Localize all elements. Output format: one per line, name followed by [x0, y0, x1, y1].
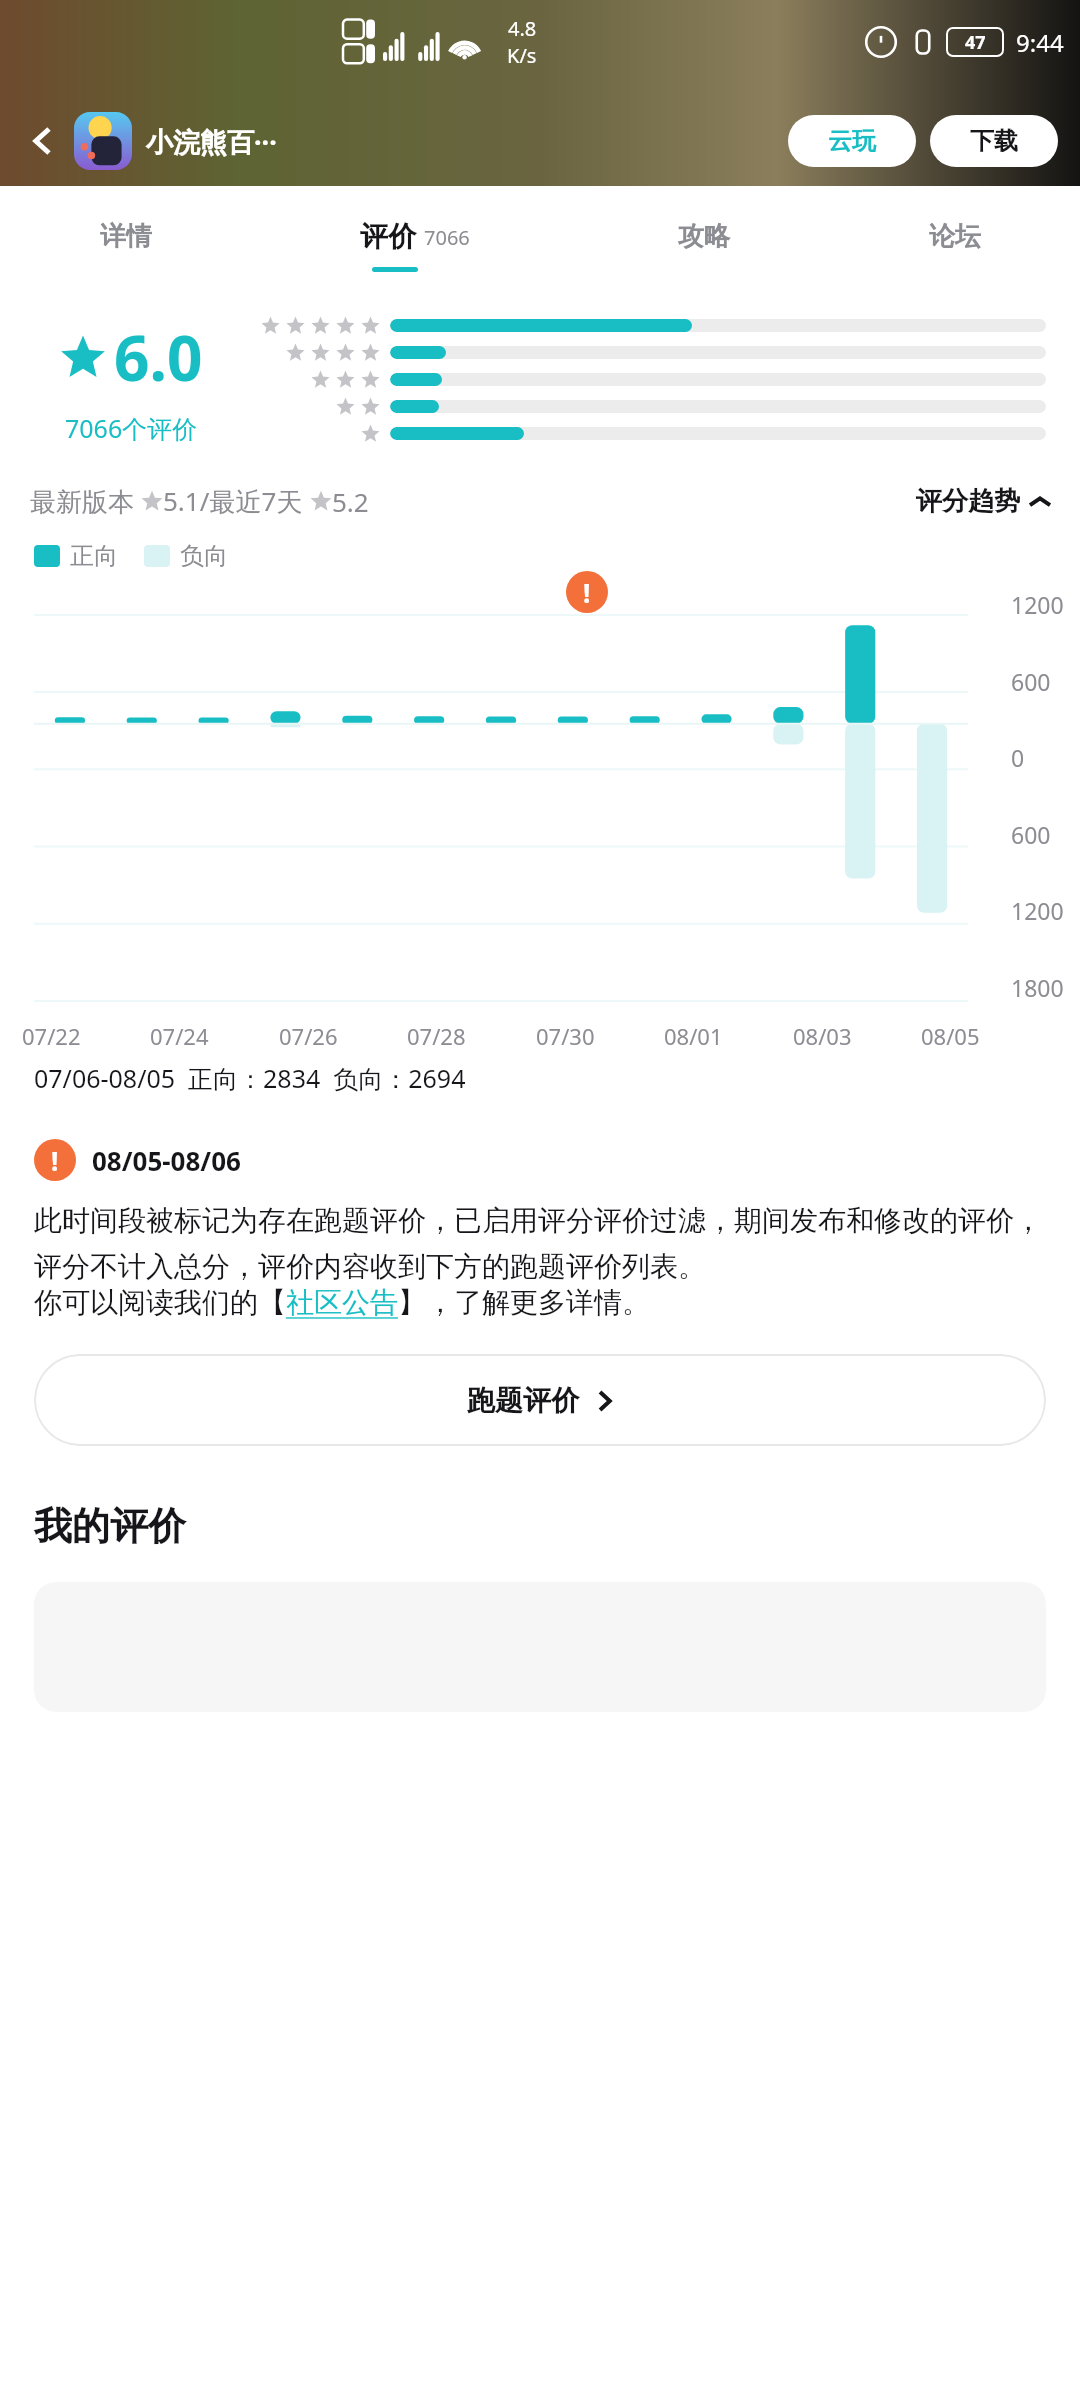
staticText: 07/22: [22, 1021, 81, 1051]
button[interactable]: 云玩: [788, 115, 916, 167]
staticText: 此时间段被标记为存在跑题评价，已启用评分评价过滤，期间发布和修改的评价，评分不计…: [34, 1203, 1046, 1285]
button[interactable]: 跑题评价: [34, 1354, 1046, 1446]
button[interactable]: 下载: [930, 115, 1058, 167]
staticText: 详情: [100, 220, 152, 253]
staticText: 7066个评价: [65, 411, 198, 445]
staticText: 1200: [1011, 895, 1064, 926]
staticText: 正向: [70, 541, 118, 571]
staticText: K/s: [507, 42, 537, 69]
button[interactable]: 论坛: [829, 186, 1080, 286]
staticText: 4.8: [508, 15, 537, 42]
staticText: 07/30: [536, 1021, 595, 1051]
staticText: 下载: [970, 126, 1018, 156]
button[interactable]: 详情: [0, 186, 251, 286]
staticText: 小浣熊百···: [146, 123, 277, 160]
button[interactable]: Warning: [566, 571, 608, 613]
staticText: 07/26: [279, 1021, 338, 1051]
staticText: 08/05-08/06: [92, 1143, 241, 1178]
button[interactable]: 评分趋势: [916, 485, 1050, 518]
staticText: 0: [1011, 742, 1025, 773]
staticText: 论坛: [929, 220, 981, 253]
staticText: 07/06-08/05 正向：2834 负向：2694: [34, 1061, 466, 1095]
staticText: 1800: [1011, 972, 1064, 1003]
staticText: 47: [965, 30, 986, 55]
staticText: 负向: [180, 541, 228, 571]
button[interactable]: 评价: [251, 186, 578, 286]
staticText: 云玩: [828, 126, 876, 156]
button[interactable]: Back: [16, 114, 70, 168]
staticText: 5.2: [332, 484, 369, 519]
staticText: 评价: [360, 219, 416, 254]
staticText: !: [583, 575, 591, 610]
staticText: 我的评价: [34, 1502, 186, 1550]
staticText: 08/03: [793, 1021, 852, 1051]
staticText: 07/28: [407, 1021, 466, 1051]
staticText: !: [51, 1143, 59, 1178]
staticText: 跑题评价: [467, 1383, 579, 1418]
staticText: 最新版本: [30, 483, 141, 519]
staticText: 5.1/最近7天: [163, 483, 310, 519]
staticText: 600: [1011, 666, 1051, 697]
staticText: 你可以阅读我们的【社区公告】，了解更多详情。: [34, 1285, 650, 1320]
staticText: 7066: [424, 224, 470, 251]
staticText: 08/05: [921, 1021, 980, 1051]
staticText: 攻略: [678, 220, 730, 253]
button[interactable]: 攻略: [578, 186, 829, 286]
staticText: 08/01: [664, 1021, 723, 1051]
staticText: 1200: [1011, 589, 1064, 620]
staticText: 07/24: [150, 1021, 209, 1051]
staticText: 6.0: [114, 315, 203, 399]
staticText: 评分趋势: [916, 485, 1020, 518]
staticText: 600: [1011, 819, 1051, 850]
staticText: 9:44: [1016, 26, 1064, 59]
